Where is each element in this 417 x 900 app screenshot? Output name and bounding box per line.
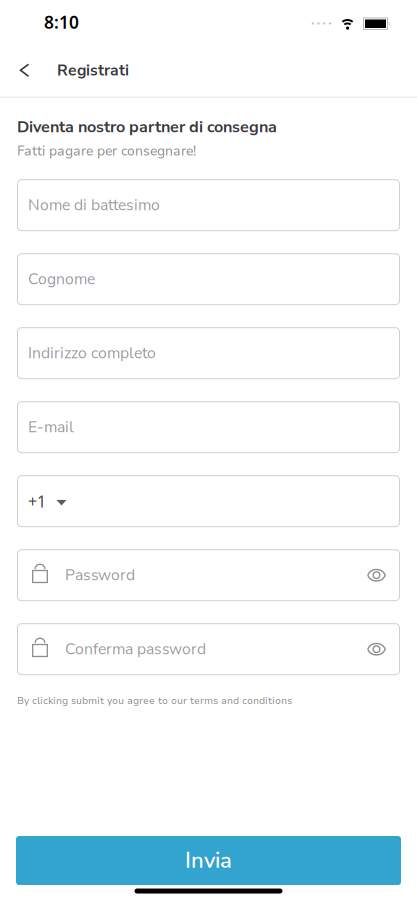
staticText: By clicking submit you agree to our term… <box>17 694 292 707</box>
button[interactable]: Invia <box>16 836 401 885</box>
button[interactable]: E-mail <box>17 401 400 453</box>
staticText: E-mail <box>28 417 74 438</box>
button[interactable]: Show password <box>359 561 394 590</box>
staticText: Indirizzo completo <box>28 343 156 364</box>
staticText: +1 <box>28 491 46 512</box>
staticText: Cognome <box>28 269 95 290</box>
staticText: Registrati <box>57 60 129 81</box>
staticText: 8:10 <box>44 10 79 33</box>
button[interactable]: Password <box>17 549 400 601</box>
staticText: Invia <box>185 845 232 875</box>
button[interactable]: Nome di battesimo <box>17 179 400 231</box>
button[interactable]: Show password <box>359 635 394 664</box>
staticText: Password <box>65 565 135 586</box>
staticText: Diventa nostro partner di consegna <box>17 116 277 138</box>
staticText: Conferma password <box>65 639 206 660</box>
staticText: Fatti pagare per consegnare! <box>17 142 196 160</box>
button[interactable]: Back <box>0 63 30 77</box>
staticText: Nome di battesimo <box>28 195 160 216</box>
button[interactable]: Cognome <box>17 253 400 305</box>
button[interactable]: Indirizzo completo <box>17 327 400 379</box>
button[interactable]: Conferma password <box>17 623 400 675</box>
button[interactable]: +1 <box>17 475 400 527</box>
